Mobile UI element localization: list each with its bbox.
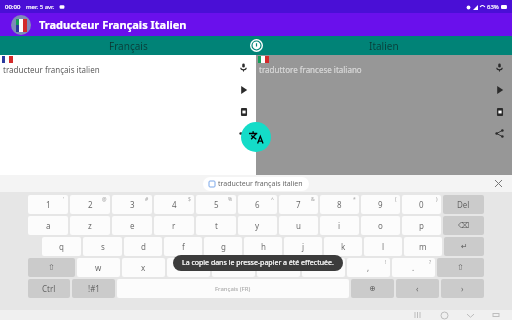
button[interactable]: j xyxy=(284,237,322,256)
button[interactable]: 8 xyxy=(320,195,359,214)
button[interactable]: ⊕ xyxy=(351,279,394,298)
button[interactable]: Share xyxy=(494,128,505,139)
button[interactable]: Ctrl xyxy=(28,279,70,298)
staticText: b xyxy=(276,262,281,273)
button[interactable]: › xyxy=(441,279,484,298)
button[interactable]: o xyxy=(361,216,400,235)
staticText: y xyxy=(255,220,260,231)
button[interactable]: ⇧ xyxy=(28,258,75,277)
button[interactable]: 2 xyxy=(70,195,110,214)
button[interactable]: z xyxy=(70,216,110,235)
button[interactable]: p xyxy=(402,216,441,235)
button[interactable]: Hide keyboard xyxy=(464,310,476,320)
button[interactable]: e xyxy=(112,216,152,235)
button[interactable]: b xyxy=(257,258,300,277)
button[interactable]: traducteur français italien xyxy=(0,55,256,175)
staticText: 00:00 xyxy=(5,3,21,11)
button[interactable]: Italien xyxy=(256,36,512,55)
button[interactable]: 3 xyxy=(112,195,152,214)
button[interactable]: Translate xyxy=(241,122,271,152)
button[interactable]: r xyxy=(154,216,194,235)
button[interactable]: ⇧ xyxy=(437,258,484,277)
button[interactable]: f xyxy=(164,237,202,256)
button[interactable]: u xyxy=(279,216,318,235)
button[interactable]: App icon xyxy=(11,15,31,35)
button[interactable]: i xyxy=(320,216,359,235)
staticText: traducteur français italien xyxy=(218,179,303,189)
staticText: ‹ xyxy=(416,283,419,294)
button[interactable]: w xyxy=(77,258,120,277)
button[interactable]: 9 xyxy=(361,195,400,214)
button[interactable]: g xyxy=(204,237,242,256)
staticText: Del xyxy=(457,199,470,210)
staticText: ' xyxy=(63,196,65,203)
staticText: ⇧ xyxy=(48,263,55,272)
button[interactable]: Keyboard layout xyxy=(490,310,502,320)
staticText: ( xyxy=(395,196,397,203)
staticText: 7 xyxy=(296,199,301,210)
button[interactable]: ↵ xyxy=(444,237,484,256)
button[interactable]: ⌫ xyxy=(443,216,484,235)
staticText: z xyxy=(88,220,92,231)
staticText: Traducteur Français Italien xyxy=(39,17,187,32)
button[interactable]: traduttore francese italiano xyxy=(256,55,512,175)
button[interactable]: ‹ xyxy=(396,279,439,298)
button[interactable]: !#1 xyxy=(72,279,115,298)
staticText: 5 xyxy=(214,199,219,210)
button[interactable]: Français (FR) xyxy=(117,279,349,298)
button[interactable]: d xyxy=(124,237,162,256)
button[interactable]: q xyxy=(42,237,81,256)
button[interactable]: v xyxy=(212,258,255,277)
button[interactable]: c xyxy=(167,258,210,277)
staticText: t xyxy=(215,220,218,231)
staticText: 9 xyxy=(378,199,383,210)
button[interactable]: 4 xyxy=(154,195,194,214)
button[interactable]: Play xyxy=(494,84,505,95)
button[interactable]: a xyxy=(28,216,68,235)
button[interactable]: n xyxy=(302,258,345,277)
staticText: m xyxy=(419,241,427,252)
button[interactable]: , xyxy=(347,258,390,277)
button[interactable]: 6 xyxy=(238,195,277,214)
button[interactable]: s xyxy=(83,237,122,256)
button[interactable]: t xyxy=(196,216,236,235)
button[interactable]: Swap languages xyxy=(250,39,263,52)
button[interactable]: Clear xyxy=(238,106,249,117)
button[interactable]: Clear xyxy=(494,106,505,117)
button[interactable]: y xyxy=(238,216,277,235)
staticText: Italien xyxy=(369,39,399,53)
button[interactable]: . xyxy=(392,258,435,277)
button[interactable]: m xyxy=(404,237,442,256)
button[interactable]: Microphone xyxy=(494,62,505,73)
staticText: i xyxy=(338,220,341,231)
staticText: * xyxy=(353,196,356,203)
staticText: k xyxy=(341,241,346,252)
button[interactable]: Microphone xyxy=(238,62,249,73)
staticText: o xyxy=(378,220,383,231)
button[interactable]: Home xyxy=(438,310,450,320)
staticText: , xyxy=(367,262,370,273)
staticText: !#1 xyxy=(88,283,100,294)
staticText: v xyxy=(231,262,236,273)
staticText: h xyxy=(261,241,266,252)
staticText: j xyxy=(302,241,305,252)
staticText: ⊕ xyxy=(369,284,376,293)
button[interactable]: Del xyxy=(443,195,484,214)
button[interactable]: traducteur français italien xyxy=(203,177,309,191)
button[interactable]: h xyxy=(244,237,282,256)
staticText: a xyxy=(46,220,51,231)
button[interactable]: Recents xyxy=(412,310,424,320)
staticText: & xyxy=(311,196,315,203)
button[interactable]: Share xyxy=(238,128,249,139)
button[interactable]: k xyxy=(324,237,362,256)
button[interactable]: 5 xyxy=(196,195,236,214)
button[interactable]: 7 xyxy=(279,195,318,214)
staticText: ^ xyxy=(271,196,274,203)
button[interactable]: Close xyxy=(492,177,505,190)
button[interactable]: l xyxy=(364,237,402,256)
button[interactable]: 1 xyxy=(28,195,68,214)
button[interactable]: Français xyxy=(0,36,256,55)
button[interactable]: x xyxy=(122,258,165,277)
button[interactable]: 0 xyxy=(402,195,441,214)
button[interactable]: Play xyxy=(238,84,249,95)
